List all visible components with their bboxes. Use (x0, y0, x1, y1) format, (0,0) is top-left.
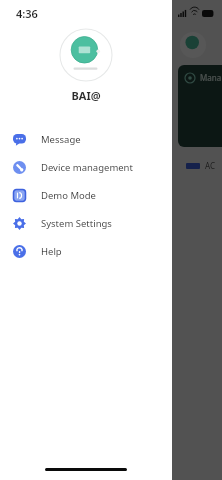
staticText: 4:36 (16, 6, 38, 21)
staticText: Mana (200, 72, 222, 83)
button[interactable]: Device management (0, 153, 172, 181)
button[interactable]: Help (0, 237, 172, 265)
button[interactable]: Demo Mode (0, 181, 172, 209)
staticText: AC (205, 160, 216, 171)
staticText: BAI@ (0, 88, 172, 103)
staticText: Device management (41, 161, 133, 174)
staticText: Message (41, 133, 81, 146)
staticText: System Settings (41, 217, 112, 230)
staticText: Demo Mode (41, 189, 96, 202)
button[interactable]: Message (0, 125, 172, 153)
staticText: Help (41, 245, 62, 258)
button[interactable]: System Settings (0, 209, 172, 237)
